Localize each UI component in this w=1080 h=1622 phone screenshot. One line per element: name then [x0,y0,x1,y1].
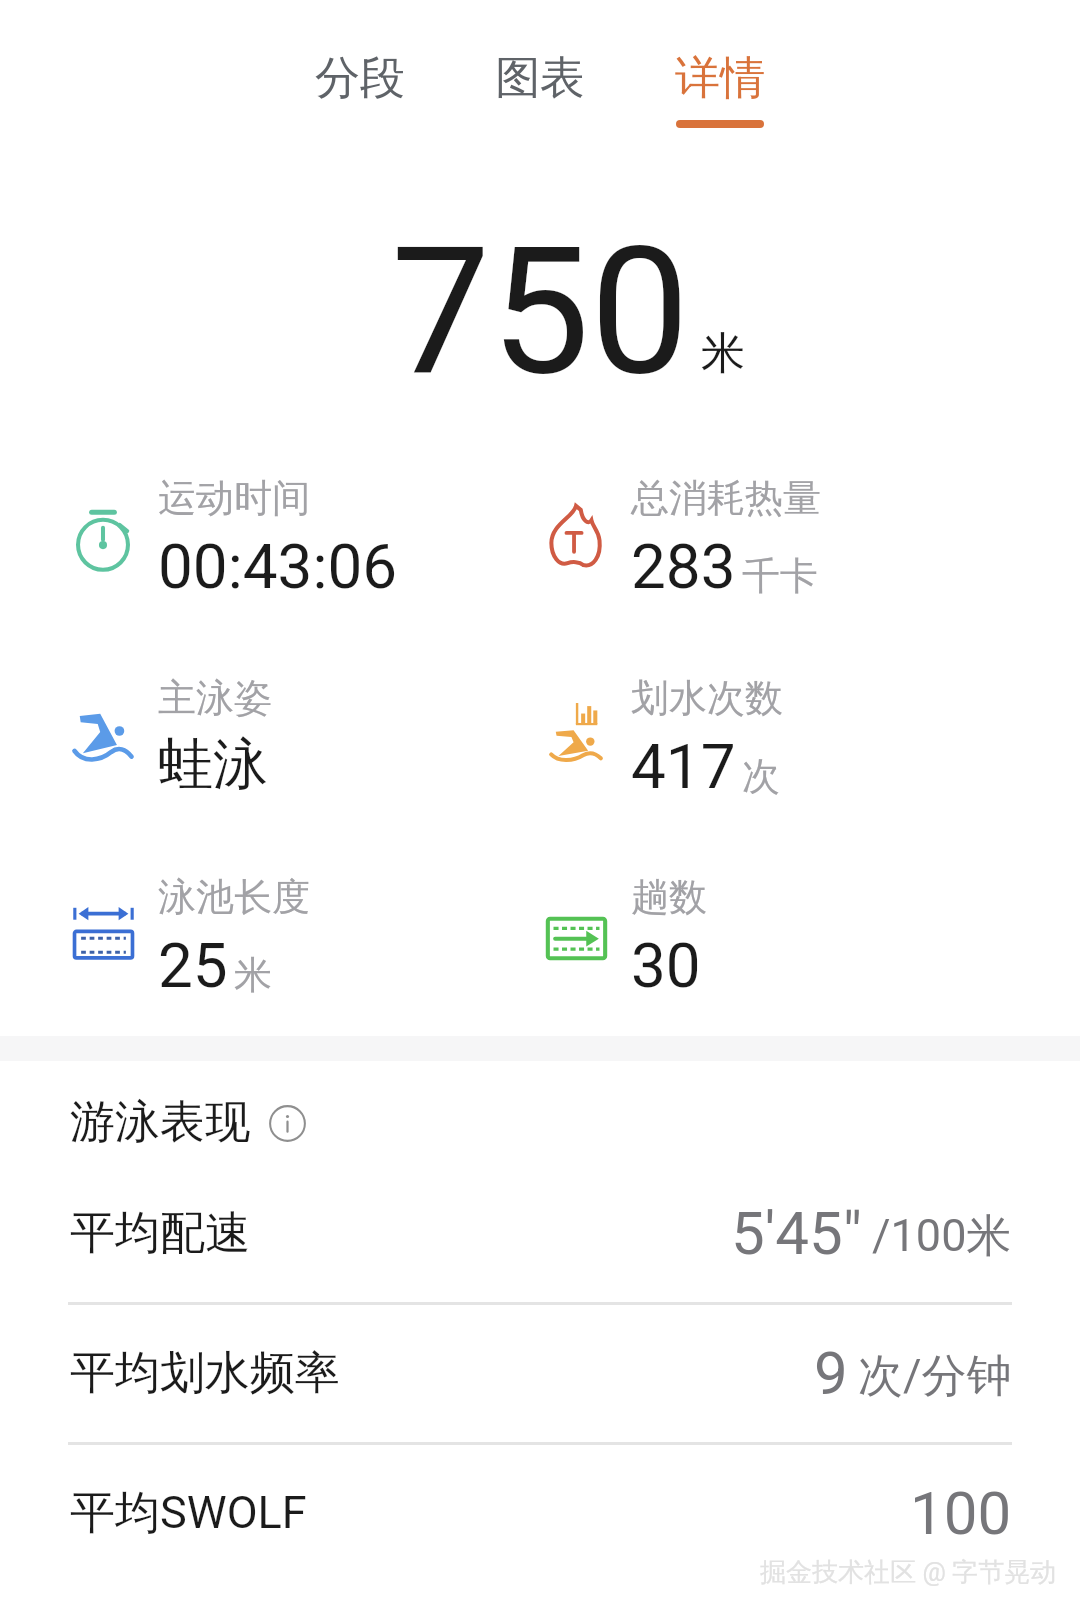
staticText: 划水次数 [631,674,783,722]
staticText: 平均划水频率 [70,1345,340,1402]
staticText: 米 [234,951,272,999]
button[interactable]: 详情 [630,0,810,140]
staticText: 分段 [315,50,405,107]
staticText: 30 [631,929,701,1002]
button[interactable]: Info [268,1104,306,1142]
staticText: 米 [701,326,745,381]
button[interactable]: 运动时间 [70,455,543,605]
staticText: 蛙泳 [158,730,268,799]
staticText: /100米 [872,1208,1012,1265]
staticText: 次 [742,752,780,800]
button[interactable]: 平均SWOLF [0,1444,1080,1584]
staticText: 平均SWOLF [70,1485,307,1542]
button[interactable]: 趟数 [543,854,1016,1004]
staticText: 5'45" [731,1198,862,1268]
button[interactable]: 平均配速 [0,1164,1080,1304]
staticText: 运动时间 [158,474,310,522]
staticText: 主泳姿 [158,674,272,722]
staticText: 9 [814,1338,848,1408]
staticText: 详情 [675,50,765,107]
staticText: 100 [910,1478,1012,1548]
staticText: 掘金技术社区 @ 字节晃动 [760,1556,1057,1589]
staticText: 417 [631,730,736,803]
staticText: 总消耗热量 [631,474,821,522]
staticText: 283 [631,530,736,603]
button[interactable]: 图表 [450,0,630,140]
staticText: 泳池长度 [158,873,310,921]
staticText: 千卡 [742,552,818,600]
staticText: 25 [158,929,228,1002]
button[interactable]: 泳池长度 [70,854,543,1004]
button[interactable]: 总消耗热量 [543,455,1016,605]
staticText: 图表 [495,50,585,107]
button[interactable]: 分段 [270,0,450,140]
staticText: 趟数 [631,873,707,921]
button[interactable]: 主泳姿 [70,655,543,805]
staticText: 750 [391,208,690,415]
staticText: 平均配速 [70,1205,250,1262]
button[interactable]: 划水次数 [543,655,1016,805]
staticText: 游泳表现 [70,1094,250,1151]
staticText: 00:43:06 [158,530,398,603]
staticText: 次/分钟 [858,1348,1012,1405]
button[interactable]: 平均划水频率 [0,1304,1080,1444]
